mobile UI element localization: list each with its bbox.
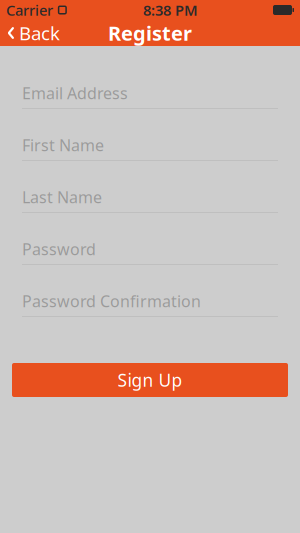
staticText: Password Confirmation — [22, 290, 201, 312]
staticText: Email Address — [22, 82, 128, 104]
button[interactable]: Sign Up — [12, 363, 288, 397]
staticText: First Name — [22, 134, 104, 156]
staticText: Back — [19, 21, 60, 45]
staticText: Password — [22, 238, 96, 260]
staticText: 8:38 PM — [143, 0, 198, 20]
staticText: Register — [108, 20, 192, 46]
staticText: Carrier — [6, 0, 53, 20]
staticText: Sign Up — [117, 368, 182, 391]
button[interactable]: Back — [0, 20, 67, 46]
staticText: Last Name — [22, 186, 102, 208]
